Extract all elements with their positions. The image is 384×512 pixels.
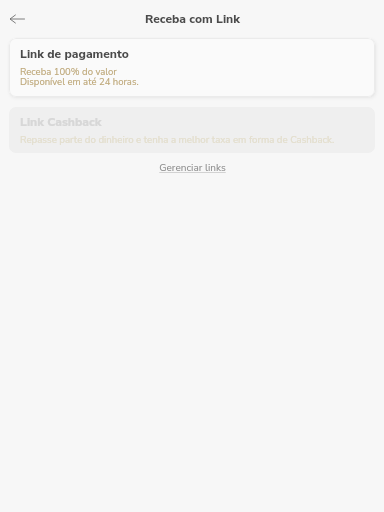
staticText: Link Cashback: [20, 114, 102, 130]
staticText: Link de pagamento: [20, 46, 129, 62]
staticText: Receba 100% do valor Disponível em até 2…: [20, 65, 139, 88]
button[interactable]: Gerenciar links: [151, 157, 234, 179]
button[interactable]: Link de pagamento: [9, 38, 375, 97]
staticText: Repasse parte do dinheiro e tenha a melh…: [20, 133, 335, 146]
staticText: Receba com Link: [145, 11, 240, 27]
staticText: Gerenciar links: [159, 161, 226, 175]
button[interactable]: Link Cashback: [9, 107, 375, 153]
button[interactable]: Voltar: [4, 5, 32, 33]
